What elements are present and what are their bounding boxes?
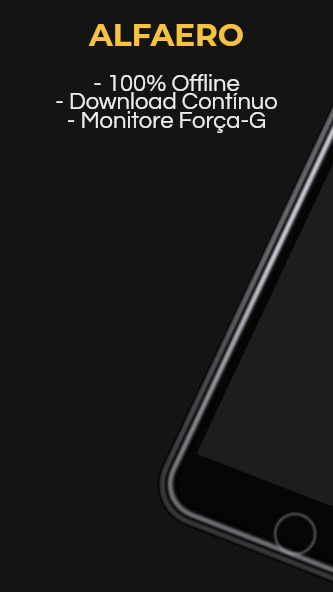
staticText: - 100% Offline - Download Contínuo - Mon… xyxy=(0,71,333,133)
staticText: ALFAERO xyxy=(0,16,333,54)
